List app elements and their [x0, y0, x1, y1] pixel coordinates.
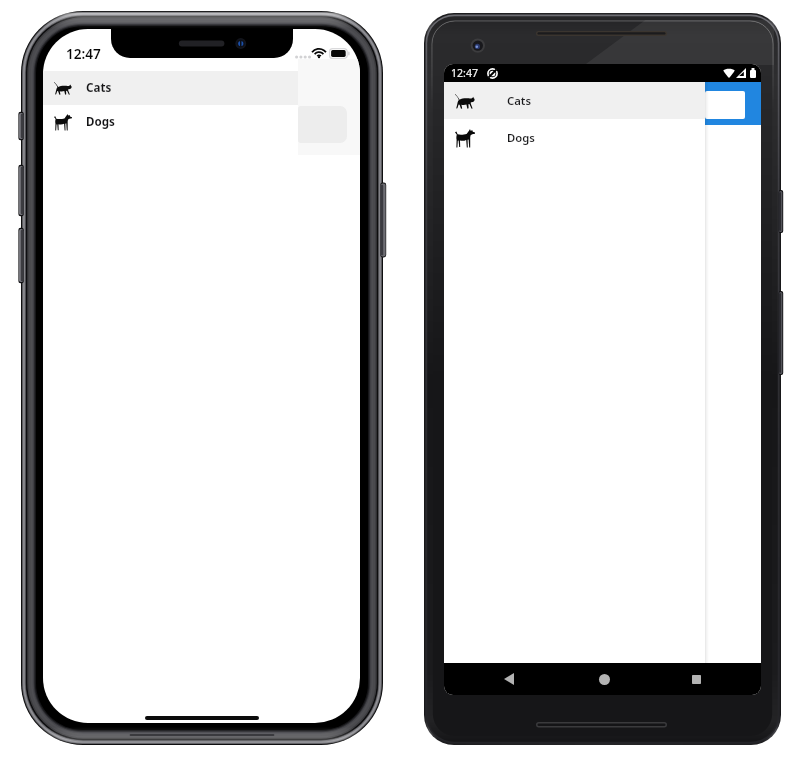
- staticText: Dogs: [507, 130, 535, 145]
- staticText: 12:47: [66, 44, 101, 63]
- button[interactable]: Cats: [444, 82, 705, 119]
- button[interactable]: Dogs: [43, 105, 360, 139]
- staticText: Cats: [507, 93, 531, 108]
- staticText: Cats: [86, 80, 112, 96]
- button[interactable]: Back: [491, 663, 527, 695]
- button[interactable]: Cats: [43, 71, 360, 105]
- button[interactable]: Home: [586, 663, 622, 695]
- staticText: Dogs: [86, 114, 115, 130]
- button[interactable]: Dogs: [444, 119, 705, 156]
- staticText: 12:47: [451, 66, 479, 80]
- button[interactable]: Recent apps: [678, 663, 714, 695]
